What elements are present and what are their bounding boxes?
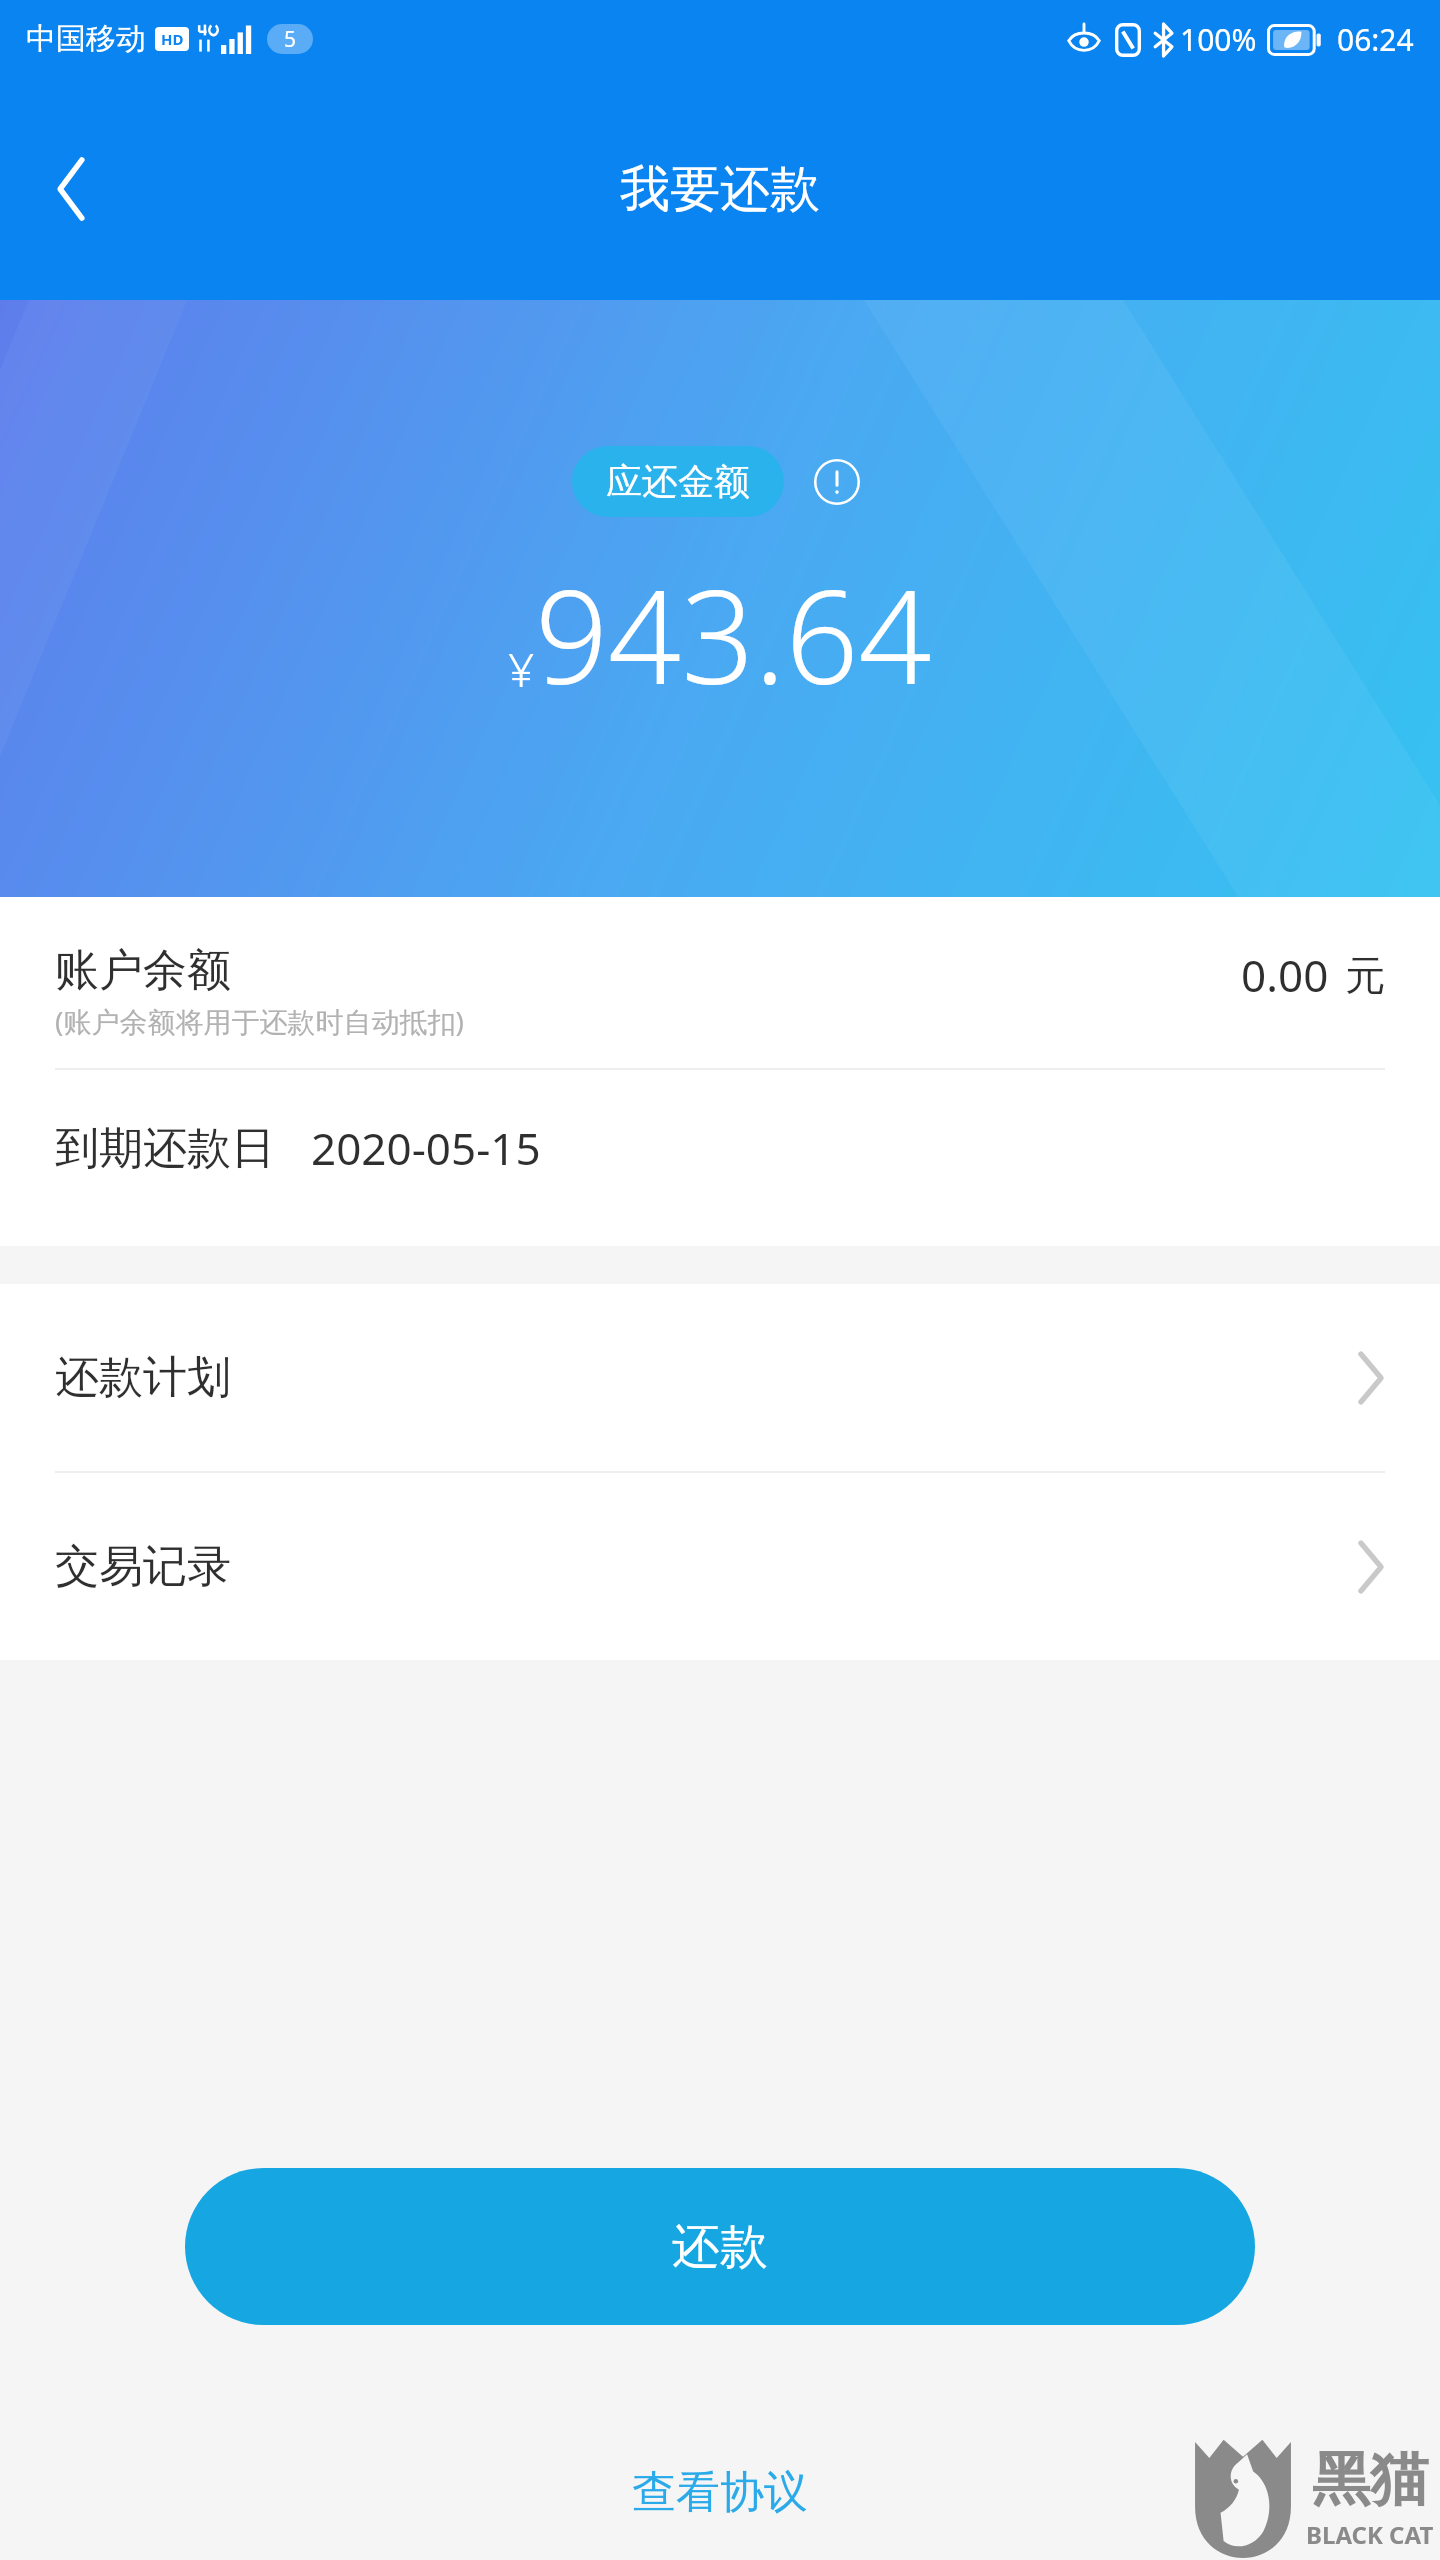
- staticText: 2020-05-15: [311, 1118, 541, 1178]
- button[interactable]: 交易记录: [0, 1473, 1440, 1660]
- staticText: 应还金额: [606, 459, 750, 504]
- button[interactable]: Back: [16, 124, 126, 254]
- staticText: (账户余额将用于还款时自动抵扣): [55, 1002, 464, 1040]
- button[interactable]: 还款计划: [0, 1284, 1440, 1473]
- staticText: HD: [161, 29, 184, 49]
- staticText: 元: [1345, 950, 1385, 1000]
- button[interactable]: 还款: [185, 2168, 1255, 2325]
- staticText: 还款计划: [55, 1350, 231, 1405]
- staticText: 黑猫: [1312, 2443, 1428, 2516]
- staticText: 5: [284, 25, 297, 54]
- staticText: 0.00: [1241, 945, 1329, 1005]
- staticText: 中国移动: [26, 20, 146, 58]
- staticText: 06:24: [1337, 19, 1414, 60]
- staticText: 我要还款: [620, 158, 820, 221]
- staticText: 还款: [672, 2217, 768, 2277]
- button[interactable]: Info: [806, 451, 868, 513]
- staticText: BLACK CAT: [1306, 2518, 1434, 2551]
- staticText: 到期还款日: [55, 1121, 275, 1176]
- button[interactable]: 查看协议: [602, 2453, 838, 2532]
- staticText: 100%: [1180, 19, 1257, 60]
- staticText: 交易记录: [55, 1539, 231, 1594]
- staticText: 查看协议: [632, 2465, 808, 2520]
- staticText: 943.64: [535, 547, 932, 721]
- staticText: 账户余额: [55, 943, 231, 998]
- staticText: ¥: [508, 638, 535, 701]
